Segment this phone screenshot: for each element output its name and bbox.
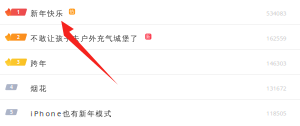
staticText: 534083 (266, 9, 286, 17)
staticText: 131672 (266, 84, 286, 92)
staticText: 新 (146, 34, 151, 40)
staticText: 1 (17, 9, 20, 15)
staticText: 5 (10, 109, 13, 115)
staticText: 2 (17, 34, 20, 40)
button[interactable]: 1 (0, 0, 300, 25)
staticText: 162559 (266, 34, 286, 42)
button[interactable]: 2 (0, 25, 300, 50)
staticText: 新年快乐 (31, 9, 62, 18)
button[interactable]: 5 (0, 100, 300, 125)
staticText: 146303 (266, 59, 286, 67)
staticText: 4 (10, 84, 13, 90)
staticText: iPhone也有新年模式 (31, 108, 111, 118)
staticText: 不敢让孩子去户外充气城堡了 (31, 34, 137, 43)
staticText: 118505 (266, 109, 286, 117)
button[interactable]: 4 (0, 75, 300, 100)
staticText: 跨年 (31, 59, 46, 68)
staticText: 3 (17, 59, 20, 65)
staticText: 烟花 (31, 84, 46, 93)
button[interactable]: 3 (0, 50, 300, 75)
staticText: 热 (69, 9, 74, 15)
